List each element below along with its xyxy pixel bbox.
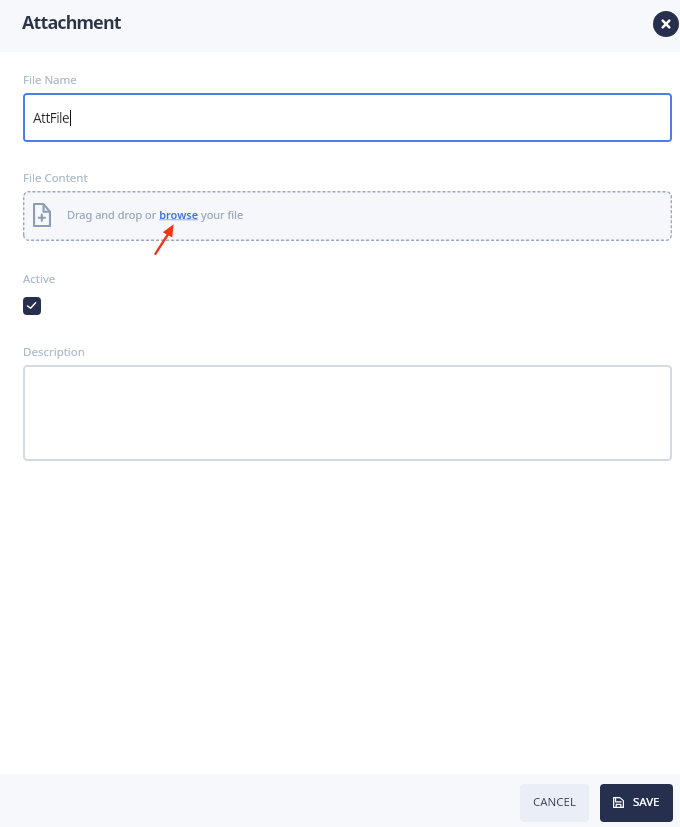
button[interactable]: CANCEL [520, 784, 589, 822]
button[interactable] [23, 365, 672, 461]
button[interactable]: Close [653, 11, 679, 37]
button[interactable]: Active [23, 297, 41, 315]
staticText: Attachment [22, 10, 121, 35]
button[interactable]: SAVE [600, 784, 673, 822]
button[interactable]: Drag and drop or browse your file [23, 191, 672, 241]
staticText: CANCEL [533, 794, 577, 810]
staticText: Drag and drop or browse your file [67, 207, 244, 222]
staticText: Description [23, 344, 85, 360]
staticText: File Content [23, 170, 88, 186]
staticText: AttFile [33, 109, 70, 127]
staticText: SAVE [633, 794, 660, 810]
staticText: Active [23, 271, 56, 287]
button[interactable]: AttFile [23, 93, 672, 142]
staticText: File Name [23, 72, 77, 88]
